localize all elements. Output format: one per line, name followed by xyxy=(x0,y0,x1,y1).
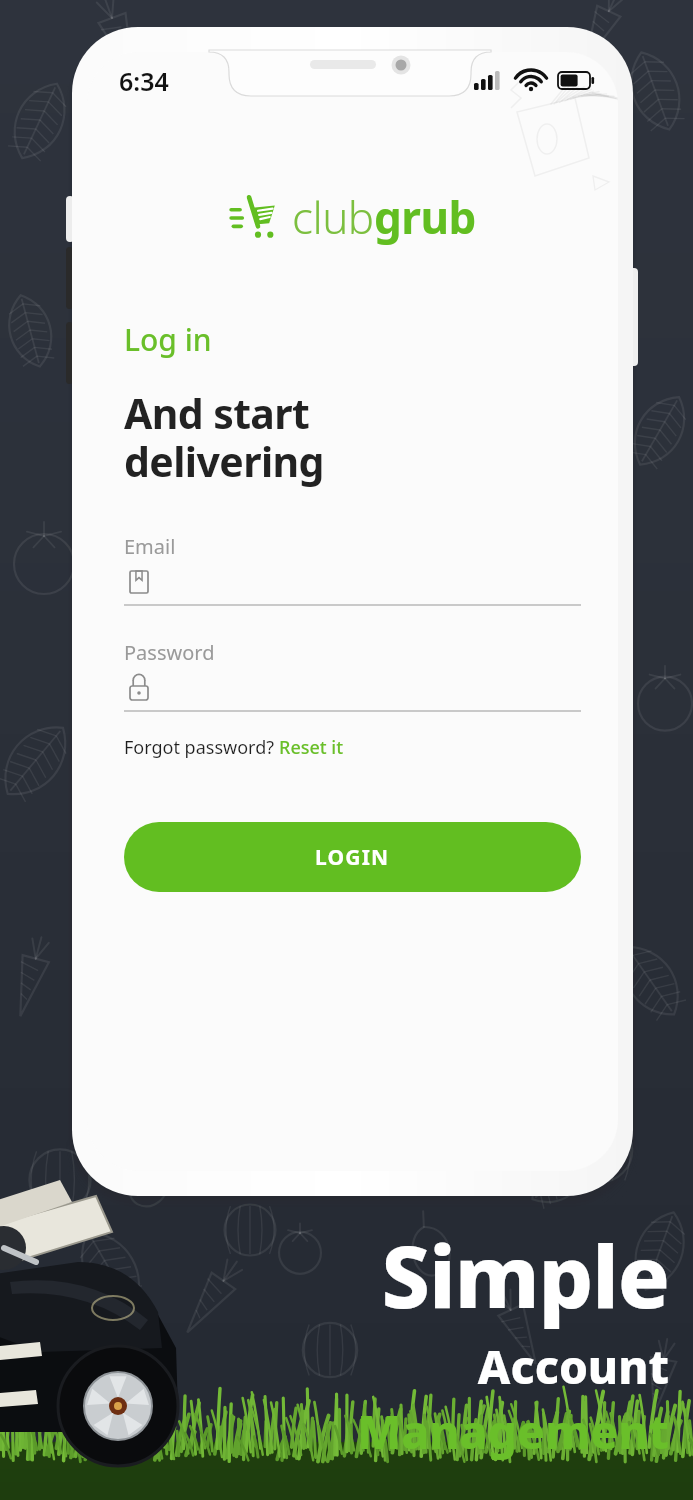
staticText: Email xyxy=(124,533,176,560)
staticText: Reset it xyxy=(279,735,344,760)
staticText: Password xyxy=(124,639,215,666)
button[interactable]: Email xyxy=(124,533,581,606)
staticText: 6:34 xyxy=(119,64,169,98)
button[interactable]: LOGIN xyxy=(124,822,581,892)
button[interactable]: Forgot password? xyxy=(124,735,344,760)
staticText: grub xyxy=(374,187,476,247)
staticText: club xyxy=(292,187,374,247)
button[interactable]: Log in xyxy=(124,319,212,360)
staticText: Management xyxy=(357,1400,669,1463)
staticText: Simple xyxy=(381,1216,669,1333)
staticText: Account xyxy=(477,1335,669,1398)
button[interactable]: Password xyxy=(124,639,581,712)
staticText: Forgot password? xyxy=(124,735,279,760)
staticText: LOGIN xyxy=(315,843,390,872)
staticText: And start delivering xyxy=(124,385,324,489)
